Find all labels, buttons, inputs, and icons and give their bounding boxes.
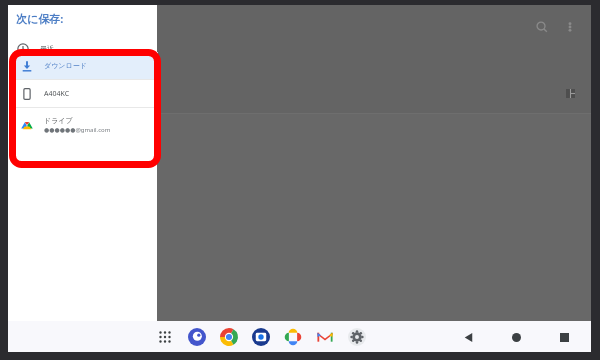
- staticText: 次に保存:: [16, 11, 64, 26]
- staticText: A404KC: [44, 89, 70, 99]
- button[interactable]: A404KC: [12, 80, 158, 107]
- button[interactable]: Back: [457, 326, 479, 348]
- button[interactable]: Toggle view: [562, 85, 578, 101]
- staticText: ダウンロード: [44, 61, 87, 70]
- staticText: ●●●●●●@gmail.com: [44, 126, 111, 134]
- button[interactable]: More options: [557, 14, 583, 40]
- button[interactable]: Photos: [282, 326, 304, 348]
- button[interactable]: Chrome: [218, 326, 240, 348]
- button[interactable]: ダウンロード: [12, 52, 158, 79]
- button[interactable]: Assistant: [186, 326, 208, 348]
- button[interactable]: Search: [529, 14, 555, 40]
- staticText: 最近: [40, 44, 54, 53]
- button[interactable]: Recent apps: [553, 326, 575, 348]
- button[interactable]: 最近: [8, 35, 157, 62]
- button[interactable]: Apps: [154, 326, 176, 348]
- button[interactable]: Gmail: [314, 326, 336, 348]
- staticText: ドライブ: [44, 116, 73, 125]
- button[interactable]: Settings: [346, 326, 368, 348]
- button[interactable]: Home: [505, 326, 527, 348]
- button[interactable]: ドライブ: [12, 108, 158, 142]
- button[interactable]: Camera: [250, 326, 272, 348]
